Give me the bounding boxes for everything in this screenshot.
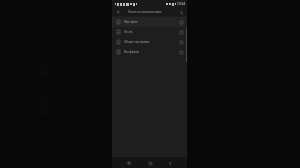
staticText: Общие настройки [124,40,150,44]
staticText: 12:34 [177,2,185,6]
button[interactable]: Общие настройки [112,37,187,47]
button[interactable]: Почта [112,27,187,37]
button[interactable]: Обзор [124,158,134,168]
button[interactable]: Назад [114,8,122,16]
staticText: Все файлы [124,50,140,54]
button[interactable]: Голосовой поиск [177,8,185,16]
button[interactable]: Назад [165,158,175,168]
button[interactable]: Мои фото [112,17,187,27]
staticText: Почта [124,30,133,34]
staticText: Поиск по приложениям [128,10,162,14]
staticText: Мои фото [124,20,138,24]
button[interactable]: Главный экран [145,158,155,168]
button[interactable]: Все файлы [112,47,187,57]
